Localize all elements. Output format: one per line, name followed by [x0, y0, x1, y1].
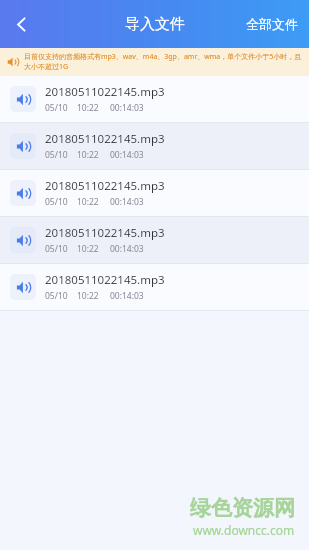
staticText: 05/10 [45, 196, 68, 208]
staticText: 20180511022145.mp3 [45, 84, 165, 100]
staticText: 05/10 [45, 243, 68, 255]
button[interactable]: 20180511022145.mp3 [0, 217, 309, 263]
button[interactable]: 20180511022145.mp3 [0, 264, 309, 310]
staticText: 10:22 [77, 102, 99, 114]
staticText: 10:22 [77, 196, 99, 208]
button[interactable]: Back [0, 0, 42, 48]
staticText: 10:22 [77, 149, 99, 161]
staticText: 20180511022145.mp3 [45, 225, 165, 241]
staticText: 20180511022145.mp3 [45, 131, 165, 147]
button[interactable]: 20180511022145.mp3 [0, 170, 309, 216]
staticText: 00:14:03 [110, 102, 144, 114]
staticText: 10:22 [77, 290, 99, 302]
staticText: 目前仅支持的音频格式有mp3、wav、m4a、3gp、amr、wma，单个文件小… [24, 52, 302, 72]
staticText: 00:14:03 [110, 243, 144, 255]
staticText: 05/10 [45, 102, 68, 114]
staticText: www.downcc.com [193, 522, 295, 538]
staticText: 导入文件 [125, 15, 185, 34]
staticText: 绿色资源网 [190, 495, 295, 521]
staticText: 20180511022145.mp3 [45, 178, 165, 194]
staticText: 00:14:03 [110, 290, 144, 302]
staticText: 05/10 [45, 290, 68, 302]
button[interactable]: 全部文件 [235, 0, 309, 48]
staticText: 00:14:03 [110, 149, 144, 161]
staticText: 10:22 [77, 243, 99, 255]
staticText: 20180511022145.mp3 [45, 272, 165, 288]
staticText: 05/10 [45, 149, 68, 161]
staticText: 00:14:03 [110, 196, 144, 208]
button[interactable]: 20180511022145.mp3 [0, 76, 309, 122]
button[interactable]: 20180511022145.mp3 [0, 123, 309, 169]
staticText: 全部文件 [246, 16, 298, 32]
